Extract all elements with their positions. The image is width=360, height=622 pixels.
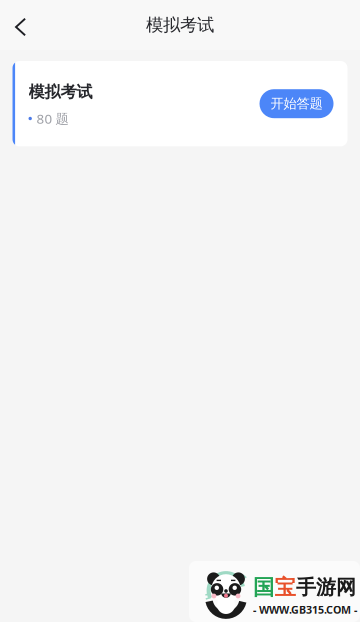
staticText: 国: [253, 574, 274, 600]
staticText: 开始答题: [270, 95, 322, 112]
staticText: 80 题: [36, 110, 68, 127]
staticText: 宝: [274, 574, 295, 600]
staticText: 手游网: [296, 575, 356, 600]
staticText: - WWW.GB315.COM -: [253, 602, 357, 617]
staticText: 模拟考试: [28, 82, 92, 102]
button[interactable]: 模拟考试: [12, 61, 347, 146]
staticText: 模拟考试: [146, 14, 214, 36]
button[interactable]: 返回: [0, 1, 41, 49]
